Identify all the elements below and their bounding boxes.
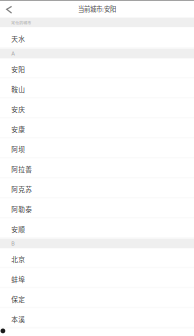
staticText: 阿拉善 [11,164,32,174]
button[interactable]: 安阳 [0,59,194,79]
button[interactable]: 阿坝 [0,139,194,159]
staticText: 保定 [11,294,25,304]
button[interactable]: 北京 [0,248,194,268]
staticText: 北京 [11,254,25,264]
staticText: 蚌埠 [11,274,25,284]
button[interactable]: Back [0,0,19,17]
staticText: 阿克苏 [11,184,32,194]
button[interactable]: 本溪 [0,308,194,328]
button[interactable]: 阿拉善 [0,159,194,179]
staticText: 安康 [11,124,25,134]
staticText: 当前城市:安阳 [78,4,116,13]
button[interactable]: 阿勒泰 [0,199,194,219]
staticText: B [11,240,14,247]
button[interactable]: 安庆 [0,99,194,119]
button[interactable]: 安康 [0,119,194,139]
button[interactable]: 鞍山 [0,79,194,99]
button[interactable]: 蚌埠 [0,268,194,288]
staticText: 安庆 [11,104,25,114]
button[interactable]: 天水 [0,27,194,49]
button[interactable]: 保定 [0,288,194,308]
button[interactable]: 安顺 [0,219,194,239]
staticText: 安阳 [11,64,25,74]
button[interactable]: 阿克苏 [0,179,194,199]
staticText: A [11,50,15,57]
staticText: 天水 [11,34,25,43]
staticText: 鞍山 [11,84,25,94]
staticText: 安顺 [11,224,25,234]
staticText: 定位的城市 [11,20,31,25]
staticText: 本溪 [11,314,25,324]
staticText: 阿勒泰 [11,204,32,214]
staticText: 阿坝 [11,144,25,154]
